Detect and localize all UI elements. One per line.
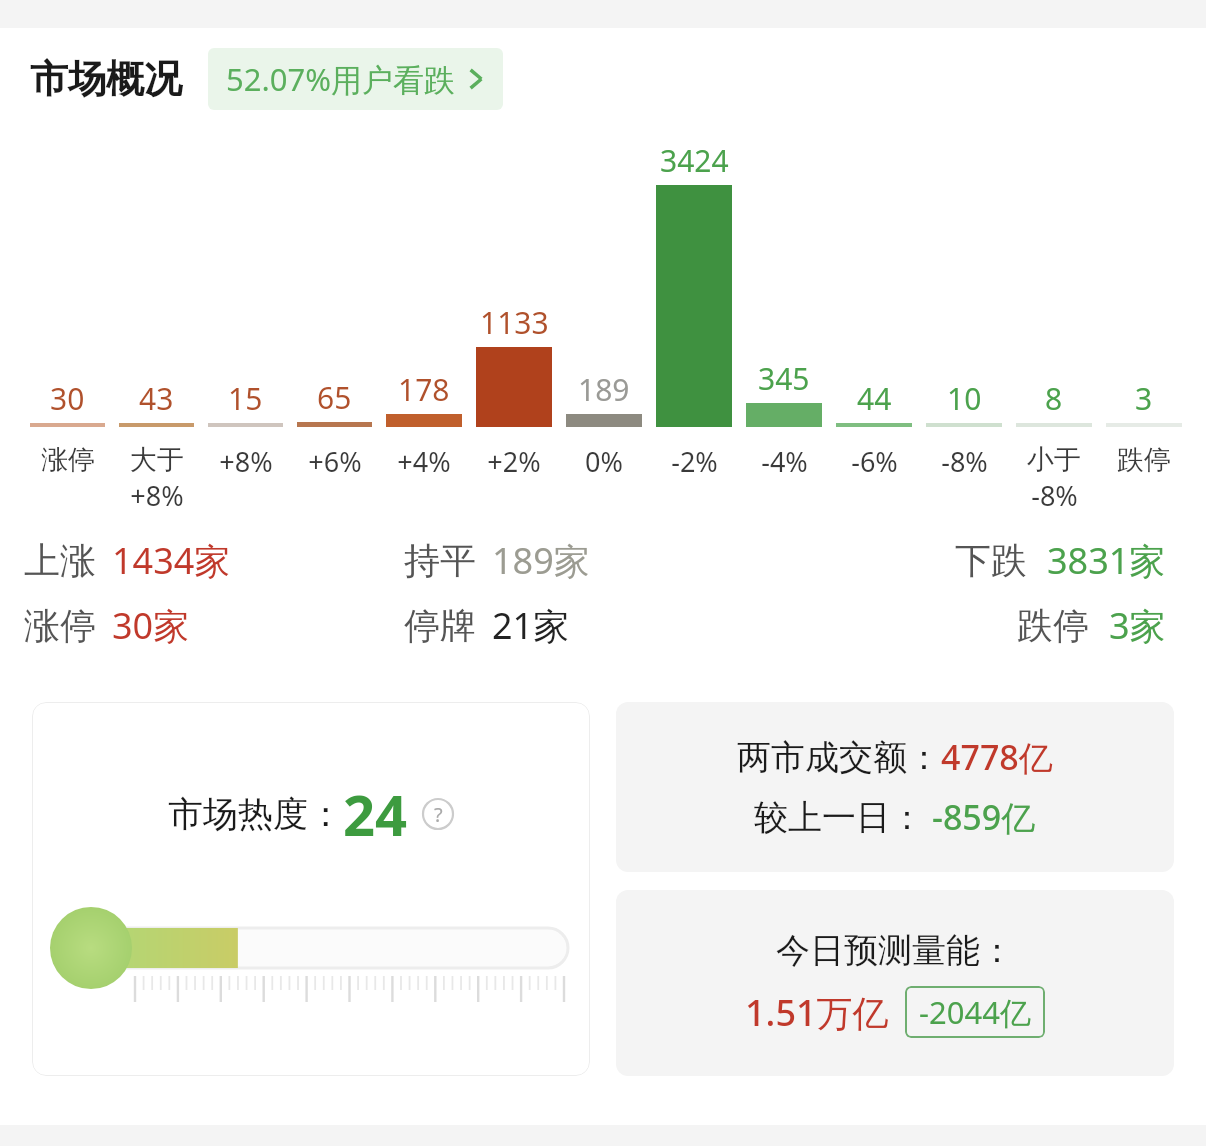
staticText: 今日预测量能：	[776, 929, 1014, 972]
staticText: 上涨	[24, 538, 96, 583]
staticText: 189	[578, 369, 630, 410]
staticText: +4%	[397, 443, 451, 480]
staticText: +8%	[130, 477, 184, 514]
staticText: 65	[317, 377, 352, 418]
staticText: -2044亿	[919, 991, 1031, 1033]
staticText: 4778亿	[941, 734, 1053, 780]
staticText: 跌停	[1017, 603, 1089, 648]
staticText: 两市成交额：	[737, 736, 941, 779]
staticText: 0%	[585, 443, 623, 480]
staticText: 持平	[404, 538, 476, 583]
staticText: 44	[857, 378, 892, 419]
staticText: 1.51万亿	[745, 988, 889, 1037]
staticText: 3831家	[1047, 536, 1166, 585]
staticText: -8%	[941, 443, 988, 480]
button[interactable]: 今日预测量能：	[616, 890, 1174, 1076]
staticText: 8	[1045, 378, 1063, 419]
staticText: 跌停	[1117, 443, 1171, 477]
staticText: 189家	[492, 536, 590, 585]
staticText: 10	[947, 378, 982, 419]
button[interactable]: 帮助	[422, 798, 454, 830]
staticText: 24	[343, 776, 408, 852]
staticText: 178	[398, 369, 450, 410]
staticText: -8%	[1031, 477, 1078, 514]
staticText: 15	[228, 378, 263, 419]
staticText: 涨停	[41, 443, 95, 477]
staticText: -6%	[851, 443, 898, 480]
staticText: 较上一日：	[754, 796, 924, 839]
staticText: 下跌	[955, 538, 1027, 583]
staticText: 1133	[480, 302, 549, 343]
staticText: 21家	[492, 601, 570, 650]
staticText: 1434家	[112, 536, 231, 585]
staticText: +6%	[308, 443, 362, 480]
staticText: 3	[1135, 378, 1153, 419]
staticText: 3家	[1109, 601, 1166, 650]
staticText: 小于	[1027, 443, 1081, 477]
button[interactable]: 52.07%用户看跌	[208, 48, 503, 110]
staticText: 30家	[112, 601, 190, 650]
staticText: +8%	[219, 443, 273, 480]
staticText: 345	[758, 358, 810, 399]
button[interactable]: 市场热度：	[32, 702, 590, 1076]
staticText: -859亿	[932, 794, 1036, 840]
staticText: 市场热度：	[168, 792, 343, 836]
staticText: 市场概况	[30, 55, 182, 103]
staticText: 3424	[660, 140, 729, 181]
staticText: 涨停	[24, 603, 96, 648]
staticText: 43	[139, 378, 174, 419]
staticText: 52.07%用户看跌	[226, 58, 455, 100]
button[interactable]: 两市成交额：	[616, 702, 1174, 872]
staticText: 大于	[130, 443, 184, 477]
staticText: 30	[50, 378, 85, 419]
staticText: -4%	[761, 443, 808, 480]
staticText: ?	[434, 801, 443, 828]
staticText: +2%	[487, 443, 541, 480]
staticText: 停牌	[404, 603, 476, 648]
staticText: -2%	[671, 443, 718, 480]
